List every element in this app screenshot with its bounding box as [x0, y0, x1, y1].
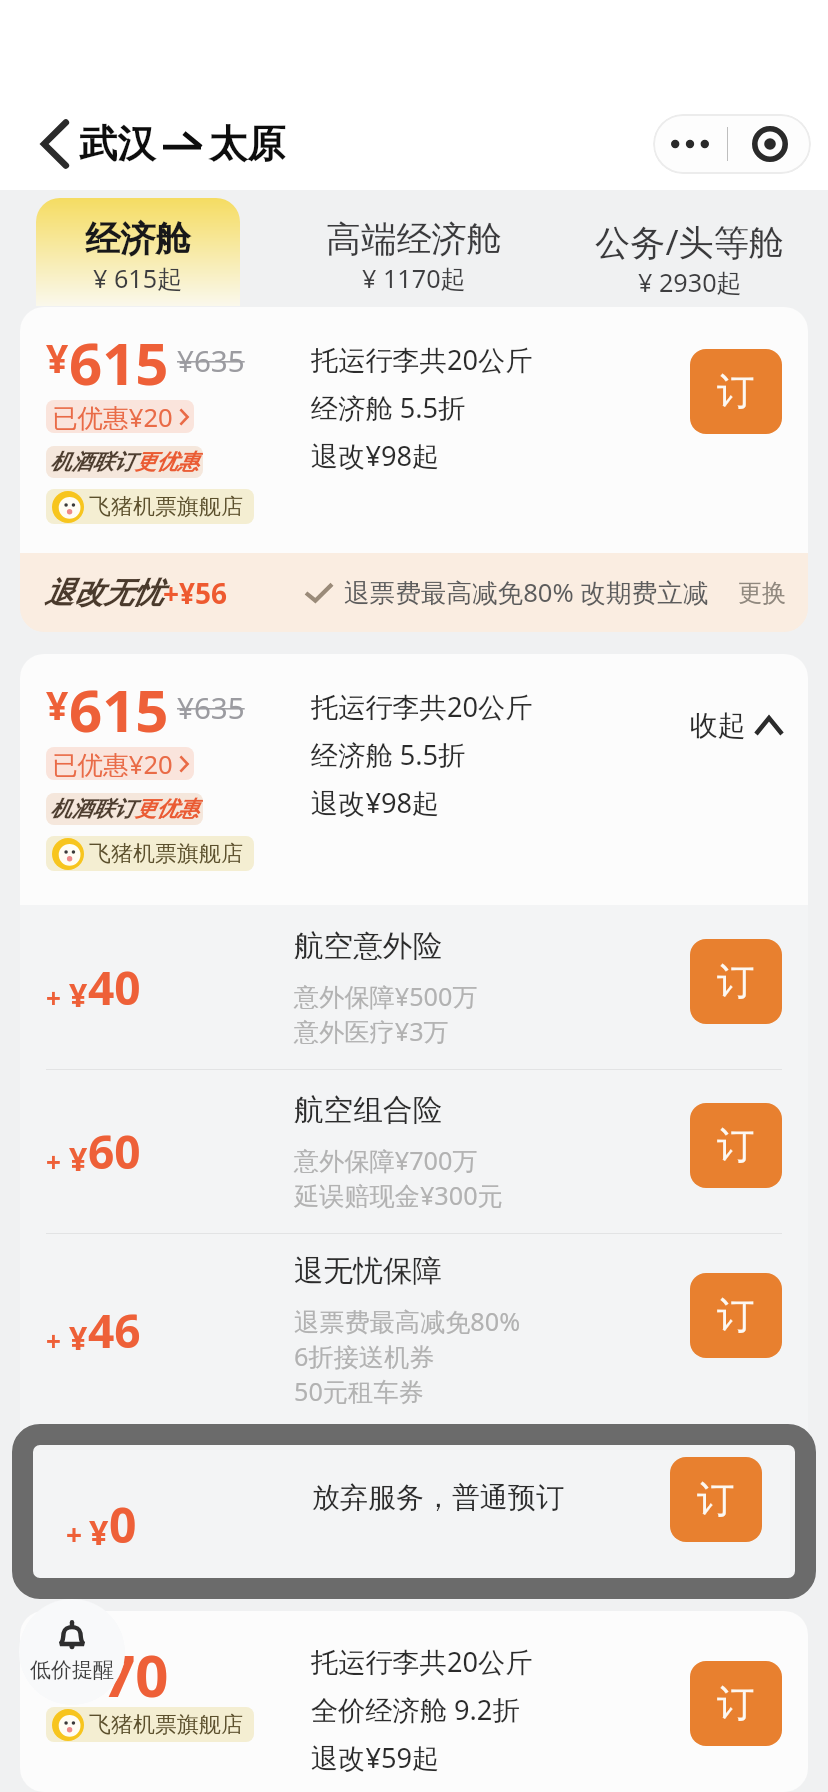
staticText: 意外医疗¥3万	[294, 1014, 449, 1048]
staticText: ¥ 615起	[93, 261, 183, 295]
staticText: 高端经济舱	[326, 217, 502, 261]
staticText: 公务/头等舱	[595, 217, 785, 265]
staticText: ¥	[69, 1316, 88, 1360]
staticText: 托运行李共20公斤 全价经济舱 9.2折 退改¥59起	[311, 1643, 533, 1776]
staticText: 更优惠	[135, 796, 199, 823]
staticText: ¥635	[177, 687, 245, 727]
staticText: +	[66, 1515, 83, 1553]
button[interactable]: 经济舱	[36, 198, 240, 306]
staticText: 6折接送机券	[294, 1339, 435, 1373]
button[interactable]: Back	[30, 110, 79, 178]
staticText: ¥	[46, 1643, 69, 1696]
staticText: ¥	[46, 678, 69, 731]
staticText: 40	[88, 956, 141, 1019]
staticText: ¥ 1170起	[362, 261, 466, 295]
staticText: ¥ 2930起	[638, 265, 742, 299]
staticText: 615	[69, 670, 169, 734]
staticText: 订	[717, 1122, 755, 1169]
staticText: 武汉	[79, 120, 156, 168]
staticText: 退无忧保障	[294, 1252, 442, 1289]
staticText: 订	[717, 1292, 755, 1339]
staticText: 0	[109, 1492, 137, 1557]
staticText: +	[46, 980, 61, 1015]
staticText: 延误赔现金¥300元	[294, 1178, 503, 1212]
button[interactable]: +	[20, 905, 808, 1069]
staticText: 退票费最高减免80%	[294, 1304, 521, 1338]
staticText: 意外保障¥700万	[294, 1143, 478, 1177]
button[interactable]: Book	[690, 939, 782, 1024]
staticText: ¥	[69, 1137, 88, 1181]
staticText: 经济舱	[85, 217, 191, 261]
staticText: 机酒联订	[50, 449, 135, 476]
staticText: 订	[717, 1680, 755, 1727]
staticText: 飞猪机票旗舰店	[89, 493, 243, 521]
button[interactable]: Book	[670, 1457, 762, 1542]
button[interactable]: +	[20, 1234, 808, 1426]
staticText: 订	[697, 1476, 735, 1523]
staticText: 退改无忧	[44, 574, 163, 611]
staticText: 航空组合险	[294, 1091, 442, 1128]
button[interactable]: 已优惠¥20	[46, 747, 194, 780]
button[interactable]: +	[20, 1070, 808, 1233]
staticText: 60	[88, 1120, 141, 1183]
button[interactable]: 低价提醒	[19, 1599, 125, 1705]
staticText: 670	[69, 1635, 169, 1699]
staticText: 退票费最高减免80% 改期费立减	[344, 575, 709, 610]
staticText: ¥	[46, 331, 69, 384]
button[interactable]: 退改无忧	[20, 553, 808, 632]
staticText: 订	[717, 958, 755, 1005]
button[interactable]: +	[20, 1426, 808, 1589]
staticText: +	[46, 1323, 61, 1358]
button[interactable]: Book	[690, 349, 782, 434]
staticText: 托运行李共20公斤 经济舱 5.5折 退改¥98起	[311, 341, 533, 474]
staticText: 615	[69, 323, 169, 387]
staticText: 50元租车券	[294, 1374, 424, 1408]
staticText: 太原	[209, 120, 286, 168]
staticText: 机酒联订	[50, 796, 135, 823]
staticText: 低价提醒	[30, 1657, 114, 1683]
staticText: 航空意外险	[294, 927, 442, 964]
staticText: +	[46, 1144, 61, 1179]
button[interactable]: 已优惠¥20	[46, 400, 194, 433]
staticText: 已优惠¥20	[52, 747, 173, 780]
staticText: 订	[717, 368, 755, 415]
button[interactable]: Book	[690, 1273, 782, 1358]
button[interactable]: Book	[690, 1103, 782, 1188]
button[interactable]: 高端经济舱	[312, 198, 516, 306]
staticText: 收起	[690, 708, 746, 743]
staticText: 飞猪机票旗舰店	[89, 1711, 243, 1739]
staticText: 放弃服务，普通预订	[312, 1480, 564, 1515]
staticText: ¥	[69, 973, 88, 1017]
staticText: 已优惠¥20	[52, 400, 173, 433]
staticText: 更优惠	[135, 449, 199, 476]
button[interactable]: Book	[690, 1661, 782, 1746]
staticText: 托运行李共20公斤 经济舱 5.5折 退改¥98起	[311, 688, 533, 821]
staticText: ¥635	[177, 340, 245, 380]
button[interactable]: More options	[653, 114, 727, 174]
button[interactable]: Close mini program	[728, 114, 811, 174]
staticText: 飞猪机票旗舰店	[89, 840, 243, 868]
button[interactable]: 收起	[690, 708, 782, 743]
button[interactable]: 公务/头等舱	[588, 198, 792, 306]
staticText: 意外保障¥500万	[294, 979, 478, 1013]
staticText: ¥	[89, 1509, 109, 1555]
staticText: 更换	[738, 578, 786, 608]
staticText: +¥56	[163, 574, 228, 612]
staticText: 46	[88, 1299, 141, 1362]
